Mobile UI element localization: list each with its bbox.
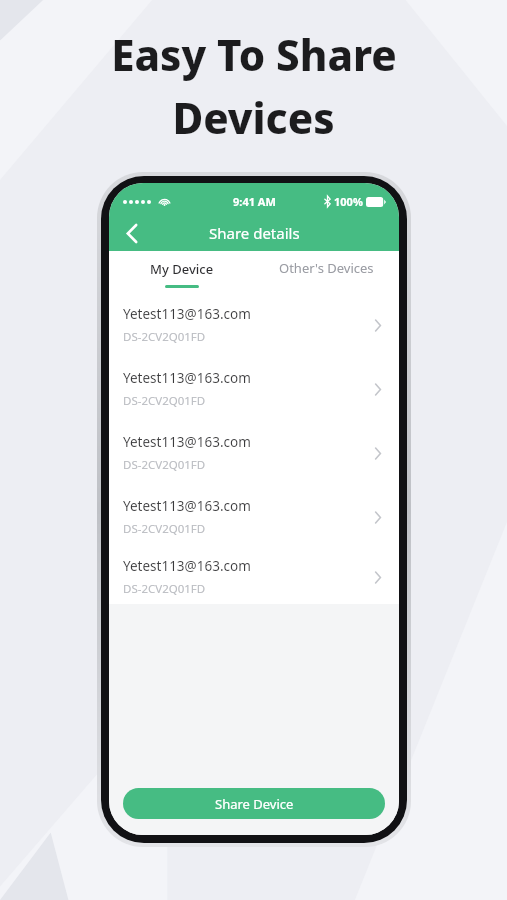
staticText: 9:41 AM (233, 194, 276, 209)
button[interactable]: Yetest113@163.com (109, 357, 399, 421)
button[interactable]: Back (115, 216, 149, 250)
button[interactable]: Yetest113@163.com (109, 293, 399, 357)
staticText: DS-2CV2Q01FD (123, 457, 206, 473)
staticText: My Device (150, 260, 214, 278)
staticText: Yetest113@163.com (123, 305, 251, 323)
button[interactable]: My Device (109, 251, 254, 293)
staticText: Easy To Share (111, 26, 397, 83)
staticText: Share Device (215, 795, 294, 813)
staticText: DS-2CV2Q01FD (123, 329, 206, 345)
button[interactable]: Yetest113@163.com (109, 485, 399, 549)
staticText: 100% (334, 194, 363, 209)
staticText: DS-2CV2Q01FD (123, 521, 206, 537)
button[interactable]: Yetest113@163.com (109, 549, 399, 604)
staticText: Other's Devices (279, 259, 374, 277)
staticText: Yetest113@163.com (123, 433, 251, 451)
button[interactable]: Yetest113@163.com (109, 421, 399, 485)
staticText: Yetest113@163.com (123, 557, 251, 575)
staticText: Yetest113@163.com (123, 369, 251, 387)
button[interactable]: Share Device (123, 788, 385, 819)
staticText: DS-2CV2Q01FD (123, 581, 206, 597)
staticText: DS-2CV2Q01FD (123, 393, 206, 409)
button[interactable]: Other's Devices (254, 251, 399, 293)
staticText: Yetest113@163.com (123, 497, 251, 515)
staticText: Devices (172, 89, 335, 146)
staticText: Share details (209, 223, 300, 243)
